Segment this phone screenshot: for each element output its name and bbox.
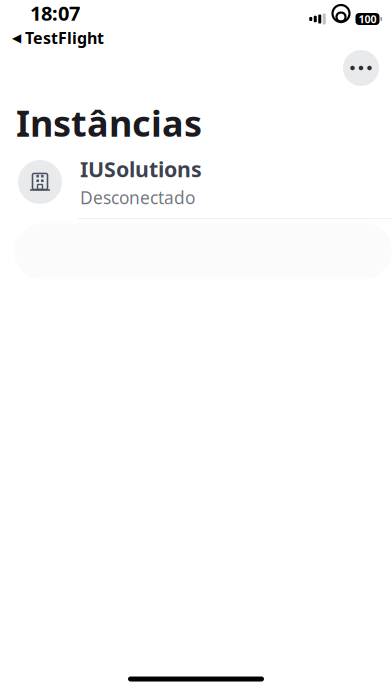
- staticText: ◀: [12, 31, 21, 45]
- staticText: Desconectado: [80, 186, 195, 209]
- staticText: 18:07: [30, 0, 80, 26]
- button[interactable]: More options: [343, 50, 379, 86]
- staticText: 100: [358, 12, 376, 26]
- staticText: TestFlight: [25, 27, 104, 48]
- staticText: IUSolutions: [80, 155, 202, 183]
- button[interactable]: IUSolutions: [0, 147, 392, 219]
- staticText: Instâncias: [16, 99, 202, 147]
